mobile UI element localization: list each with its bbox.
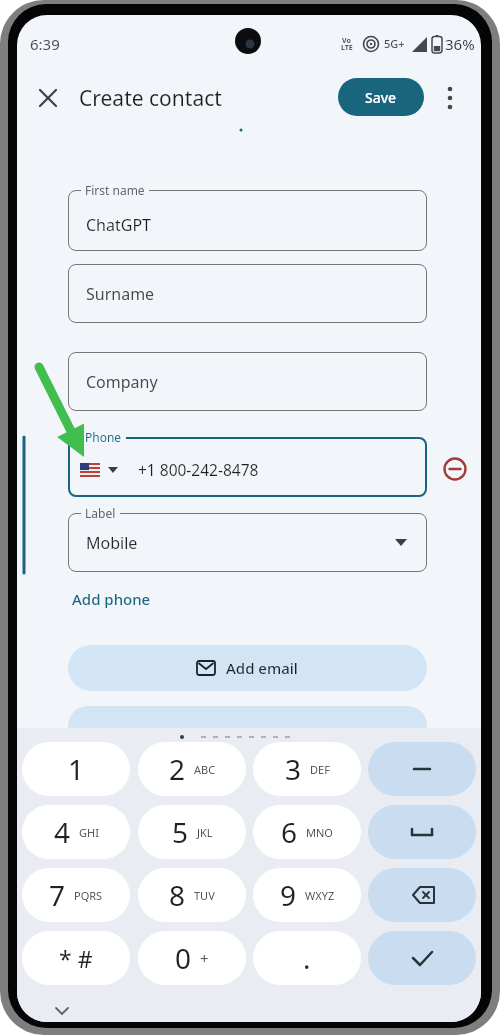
button[interactable]: 8 [138, 868, 246, 922]
button[interactable] [441, 85, 459, 111]
button[interactable]: ChatGPT [68, 190, 427, 251]
staticText: 9 [280, 876, 297, 914]
button[interactable] [368, 931, 476, 985]
button[interactable] [368, 868, 476, 922]
staticText: TUV [194, 888, 215, 903]
staticText: 5 [172, 813, 189, 851]
button[interactable]: 6 [253, 805, 361, 859]
staticText: LTE [341, 43, 353, 53]
button[interactable] [368, 805, 476, 859]
staticText: +1 800-242-8478 [138, 459, 259, 480]
button[interactable]: Save [338, 78, 424, 116]
button[interactable]: 1 [22, 742, 130, 796]
staticText: PQRS [74, 888, 103, 903]
button[interactable]: 2 [138, 742, 246, 796]
staticText: Label [85, 505, 116, 521]
staticText: Add phone [72, 589, 151, 609]
staticText: 7 [49, 876, 66, 914]
staticText: ABC [194, 762, 216, 777]
button[interactable]: . [253, 931, 361, 985]
button[interactable] [442, 456, 468, 482]
button[interactable]: * # [22, 931, 130, 985]
staticText: 36% [445, 34, 475, 54]
staticText: 6:39 [30, 34, 60, 54]
staticText: Create contact [79, 84, 222, 113]
button[interactable]: 3 [253, 742, 361, 796]
button[interactable] [368, 742, 476, 796]
staticText: 4 [54, 813, 71, 851]
staticText: 6 [281, 813, 298, 851]
button[interactable]: 0 [138, 931, 246, 985]
staticText: * # [59, 943, 93, 974]
button[interactable]: Add email [68, 645, 427, 691]
staticText: 0 [175, 939, 192, 977]
staticText: 5G+ [384, 36, 405, 51]
staticText: WXYZ [305, 888, 335, 903]
staticText: 2 [169, 750, 186, 788]
staticText: DEF [310, 762, 330, 777]
staticText: Phone [85, 429, 122, 445]
button[interactable] [35, 85, 61, 111]
button[interactable]: 4 [22, 805, 130, 859]
staticText: JKL [197, 825, 213, 840]
staticText: Vo [342, 36, 351, 46]
button[interactable]: Surname [68, 264, 427, 323]
button[interactable]: Company [68, 352, 427, 411]
staticText: . [303, 939, 311, 977]
staticText: 3 [285, 750, 302, 788]
staticText: First name [85, 182, 145, 198]
button[interactable]: 7 [22, 868, 130, 922]
staticText: MNO [306, 825, 333, 840]
button[interactable]: Add phone [72, 589, 151, 609]
staticText: 8 [169, 876, 186, 914]
staticText: Mobile [86, 532, 138, 554]
button[interactable]: +1 800-242-8478 [68, 437, 427, 497]
staticText: Save [365, 88, 397, 107]
button[interactable]: 9 [253, 868, 361, 922]
staticText: + [200, 948, 209, 968]
staticText: ChatGPT [86, 214, 151, 236]
staticText: Add email [226, 658, 298, 678]
staticText: Surname [86, 283, 155, 305]
staticText: Company [86, 371, 158, 393]
button[interactable]: 5 [138, 805, 246, 859]
staticText: 1 [68, 750, 85, 788]
button[interactable]: Mobile [68, 513, 427, 572]
staticText: GHI [79, 825, 99, 840]
